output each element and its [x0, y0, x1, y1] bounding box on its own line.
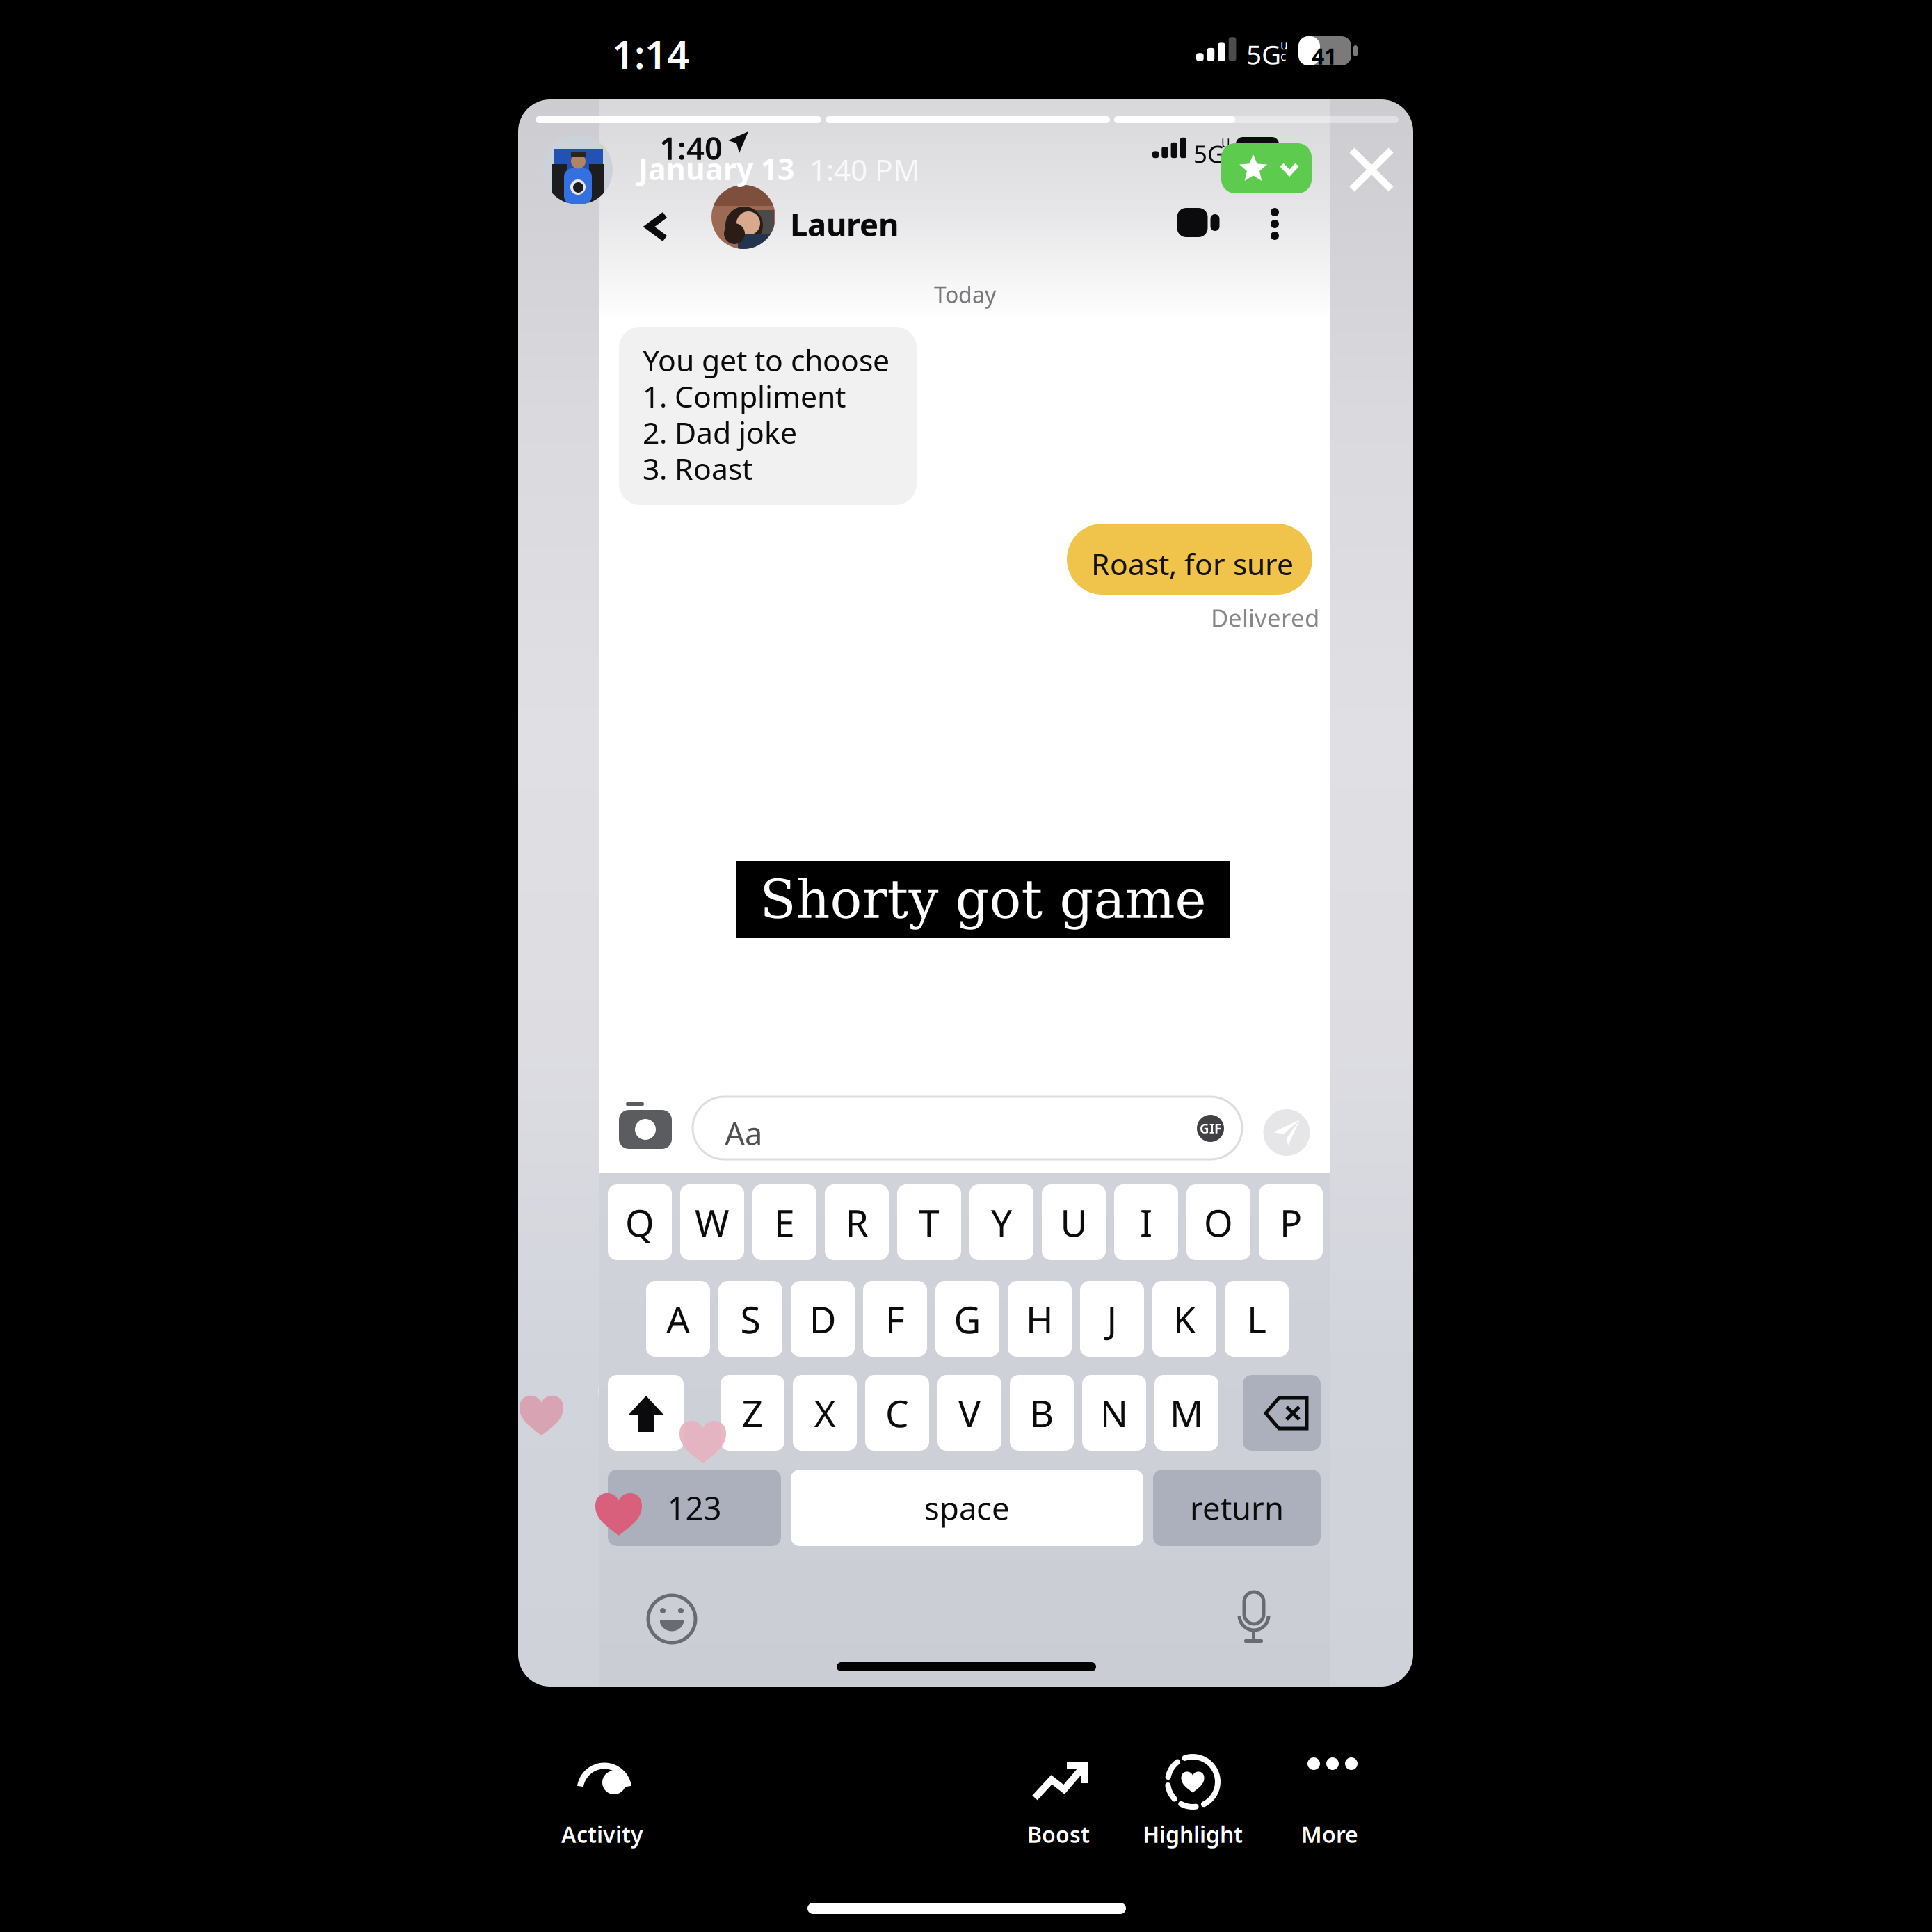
staticText: Delivered	[1211, 602, 1319, 634]
button[interactable]: S	[718, 1281, 782, 1357]
button[interactable]: D	[791, 1281, 855, 1357]
staticText: 123	[667, 1487, 722, 1529]
staticText: 1:40 PM	[810, 150, 920, 189]
button[interactable]: Y	[969, 1184, 1033, 1260]
staticText: F	[885, 1294, 905, 1344]
button[interactable]: U	[1042, 1184, 1106, 1260]
button[interactable]: A	[646, 1281, 710, 1357]
staticText: Aa	[725, 1112, 762, 1154]
staticText: 41	[1312, 41, 1337, 71]
staticText: c	[1280, 48, 1286, 64]
staticText: O	[1204, 1198, 1233, 1247]
staticText: Today	[934, 280, 996, 309]
button[interactable]	[608, 1375, 684, 1451]
staticText: You get to choose	[643, 340, 889, 380]
staticText: R	[845, 1198, 868, 1247]
button[interactable]: F	[863, 1281, 927, 1357]
staticText: T	[919, 1198, 940, 1247]
button[interactable]: Dictate	[1237, 1592, 1271, 1648]
button[interactable]: space	[791, 1470, 1143, 1546]
staticText: X	[814, 1388, 836, 1437]
button[interactable]: H	[1008, 1281, 1072, 1357]
staticText: D	[809, 1294, 836, 1344]
staticText: W	[695, 1198, 730, 1247]
button[interactable]: Activity	[561, 1762, 649, 1855]
staticText: K	[1173, 1294, 1196, 1344]
staticText: u	[1280, 37, 1288, 53]
button[interactable]: I	[1114, 1184, 1178, 1260]
staticText: U	[1221, 135, 1230, 151]
staticText: U	[1060, 1198, 1087, 1247]
button[interactable]: Q	[608, 1184, 672, 1260]
staticText: Roast, for sure	[1091, 544, 1294, 583]
staticText: January 13	[638, 149, 794, 188]
button[interactable]: W	[680, 1184, 744, 1260]
button[interactable]: K	[1152, 1281, 1216, 1357]
staticText: Boost	[1027, 1819, 1090, 1849]
button[interactable]: P	[1259, 1184, 1323, 1260]
staticText: Shorty got game	[760, 869, 1206, 930]
staticText: 5G	[1193, 138, 1225, 170]
staticText: Z	[742, 1388, 763, 1437]
button[interactable]: Video call	[1171, 208, 1214, 237]
button[interactable]: GIF	[1194, 1115, 1227, 1142]
button[interactable]: Boost	[1027, 1762, 1093, 1855]
staticText: B	[1030, 1388, 1054, 1437]
button[interactable]: O	[1186, 1184, 1250, 1260]
staticText: P	[1280, 1198, 1302, 1247]
staticText: GIF	[1200, 1120, 1221, 1137]
staticText: Y	[991, 1198, 1012, 1247]
staticText: C	[885, 1388, 909, 1437]
button[interactable]: Camera	[618, 1091, 673, 1143]
button[interactable]: return	[1153, 1470, 1321, 1546]
button[interactable]: 123	[608, 1470, 781, 1546]
staticText: 3. Roast	[643, 449, 752, 488]
staticText: 5G	[1246, 36, 1281, 72]
button[interactable]: Close friends	[1221, 143, 1312, 193]
staticText: M	[1170, 1388, 1203, 1437]
staticText: E	[774, 1198, 795, 1247]
button[interactable]: L	[1225, 1281, 1289, 1357]
staticText: Highlight	[1143, 1819, 1243, 1849]
button[interactable]: More options	[1266, 208, 1283, 240]
button[interactable]: N	[1082, 1375, 1146, 1451]
button[interactable]: More	[1301, 1762, 1360, 1855]
staticText: Activity	[561, 1819, 643, 1849]
button[interactable]: T	[897, 1184, 961, 1260]
button[interactable]: Z	[721, 1375, 784, 1451]
button[interactable]: V	[937, 1375, 1001, 1451]
staticText: 1:14	[612, 28, 689, 80]
button[interactable]: Highlight	[1143, 1762, 1246, 1855]
button[interactable]: J	[1080, 1281, 1144, 1357]
staticText: L	[1247, 1294, 1266, 1344]
staticText: N	[1100, 1388, 1128, 1437]
staticText: S	[740, 1294, 760, 1344]
button[interactable]	[1243, 1375, 1321, 1451]
staticText: space	[924, 1487, 1010, 1529]
button[interactable]: C	[865, 1375, 929, 1451]
staticText: 1. Compliment	[643, 376, 846, 416]
button[interactable]: G	[935, 1281, 999, 1357]
staticText: 1:40	[659, 127, 723, 168]
button[interactable]: M	[1154, 1375, 1218, 1451]
staticText: More	[1301, 1819, 1358, 1849]
button[interactable]: X	[793, 1375, 857, 1451]
staticText: Lauren	[790, 203, 899, 245]
button[interactable]: Emoji keyboard	[647, 1595, 696, 1643]
button[interactable]: E	[752, 1184, 816, 1260]
staticText: V	[958, 1388, 981, 1437]
staticText: Q	[625, 1198, 654, 1247]
staticText: H	[1026, 1294, 1054, 1344]
button[interactable]: Send	[1259, 1109, 1314, 1156]
button[interactable]: Close story	[1349, 147, 1394, 193]
staticText: return	[1190, 1487, 1284, 1529]
staticText: I	[1140, 1198, 1152, 1247]
button[interactable]: R	[825, 1184, 889, 1260]
staticText: A	[666, 1294, 690, 1344]
staticText: J	[1107, 1294, 1117, 1344]
button[interactable]: B	[1010, 1375, 1074, 1451]
staticText: 2. Dad joke	[643, 412, 797, 452]
staticText: G	[954, 1294, 981, 1344]
button[interactable]: Back	[647, 214, 667, 240]
